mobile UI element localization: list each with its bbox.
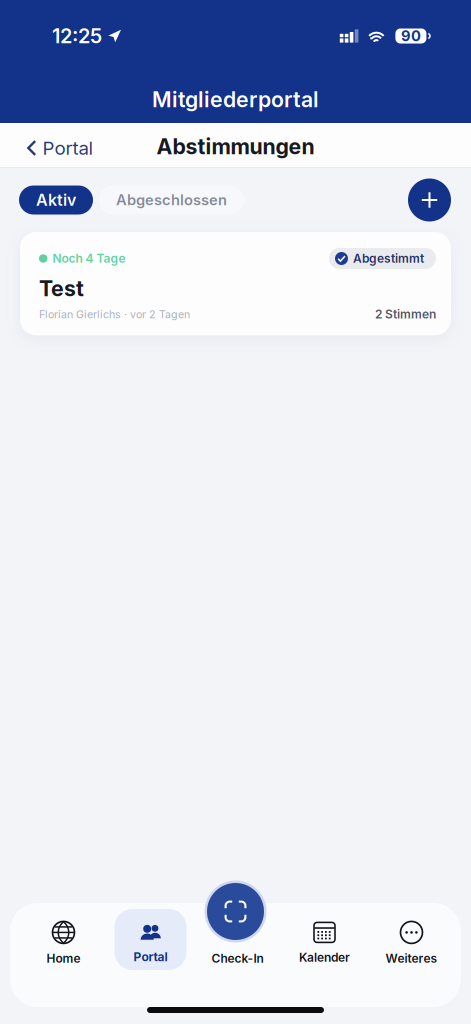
button[interactable]: Check-In	[204, 880, 266, 942]
staticText: 2 Stimmen	[375, 307, 436, 321]
staticText: Check-In	[211, 951, 263, 966]
button[interactable]: Kalender	[288, 909, 360, 970]
button[interactable]: Aktiv	[19, 185, 93, 214]
button[interactable]: Portal	[0, 124, 107, 169]
staticText: Aktiv	[36, 191, 76, 209]
button[interactable]: Noch 4 Tage	[20, 232, 451, 335]
staticText: Abstimmungen	[156, 134, 314, 159]
staticText: Weiteres	[385, 951, 437, 966]
staticText: Mitgliederportal	[152, 87, 319, 112]
staticText: Portal	[42, 137, 93, 159]
staticText: Portal	[133, 950, 167, 964]
button[interactable]: Neue Abstimmung	[408, 178, 451, 221]
button[interactable]: Abgeschlossen	[99, 185, 244, 214]
button[interactable]: Weiteres	[375, 909, 447, 970]
staticText: Home	[46, 951, 80, 966]
staticText: Noch 4 Tage	[52, 251, 125, 266]
staticText: Abgeschlossen	[116, 191, 227, 209]
button[interactable]: Portal	[114, 909, 186, 970]
staticText: Kalender	[299, 950, 350, 965]
button[interactable]: Check-In	[201, 909, 273, 970]
staticText: 12:25	[52, 24, 102, 48]
staticText: Test	[39, 276, 84, 301]
button[interactable]: Home	[27, 909, 99, 970]
staticText: 90	[401, 27, 421, 45]
staticText: Abgestimmt	[353, 251, 424, 266]
staticText: Florian Gierlichs · vor 2 Tagen	[39, 308, 190, 321]
